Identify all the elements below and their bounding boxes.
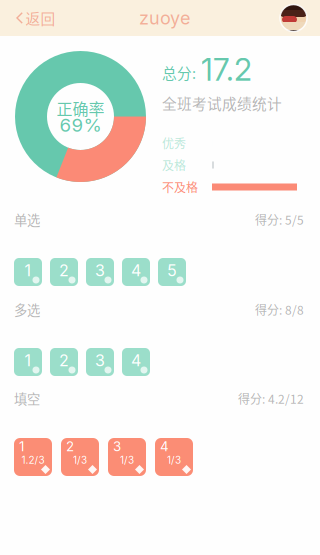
staticText: zuoye (139, 7, 190, 29)
button[interactable]: 4 (155, 438, 193, 476)
staticText: 1 (19, 438, 24, 454)
button[interactable]: 2 (50, 258, 78, 286)
staticText: 得分: 4.2/12 (238, 390, 304, 407)
staticText: 3 (95, 261, 105, 280)
button[interactable]: 返回 (0, 0, 63, 36)
staticText: 1.2/3 (21, 454, 44, 466)
button[interactable]: 4 (122, 258, 150, 286)
button[interactable]: 3 (86, 348, 114, 376)
staticText: 1/3 (120, 454, 134, 466)
staticText: 填空 (14, 389, 40, 408)
staticText: 3 (95, 351, 105, 370)
button[interactable]: 2 (61, 438, 99, 476)
button[interactable]: 1 (14, 438, 52, 476)
staticText: 返回 (25, 7, 55, 29)
button[interactable]: 5 (158, 258, 186, 286)
staticText: 总分: (162, 62, 196, 83)
button[interactable]: 3 (86, 258, 114, 286)
staticText: 单选 (14, 210, 40, 229)
button[interactable]: 1 (14, 348, 42, 376)
staticText: 多选 (14, 300, 40, 319)
staticText: 1/3 (73, 454, 87, 466)
staticText: 1 (24, 351, 31, 370)
staticText: 2 (59, 261, 69, 280)
staticText: 1 (24, 261, 31, 280)
staticText: 5 (167, 261, 177, 280)
staticText: 2 (59, 351, 69, 370)
staticText: 17.2 (201, 51, 252, 88)
button[interactable]: Profile (280, 0, 320, 36)
staticText: 1/3 (167, 454, 181, 466)
staticText: 及格 (162, 156, 186, 174)
staticText: 正确率 (56, 96, 104, 120)
staticText: 不及格 (162, 178, 198, 196)
staticText: 优秀 (162, 134, 186, 152)
staticText: 得分: 5/5 (255, 211, 304, 228)
button[interactable]: 2 (50, 348, 78, 376)
staticText: 2 (66, 438, 74, 454)
staticText: 得分: 8/8 (255, 301, 304, 318)
button[interactable]: 1 (14, 258, 42, 286)
staticText: 4 (131, 351, 141, 370)
staticText: 4 (131, 261, 141, 280)
staticText: 全班考试成绩统计 (162, 92, 282, 114)
button[interactable]: 4 (122, 348, 150, 376)
staticText: 3 (113, 438, 121, 454)
staticText: 69% (59, 114, 101, 136)
staticText: 4 (160, 438, 169, 454)
button[interactable]: 3 (108, 438, 146, 476)
